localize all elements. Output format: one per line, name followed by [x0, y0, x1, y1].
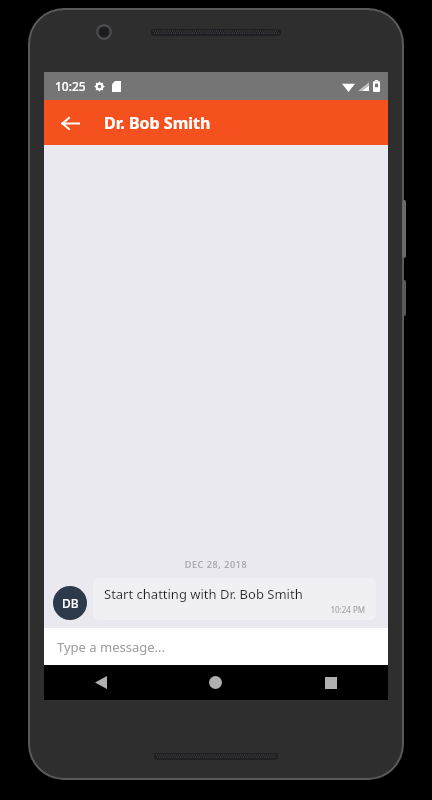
button[interactable]: DB: [53, 578, 376, 620]
staticText: Start chatting with Dr. Bob Smith: [104, 585, 303, 603]
staticText: DB: [62, 595, 79, 611]
staticText: Type a message...: [57, 638, 165, 656]
button[interactable]: Home: [158, 665, 273, 700]
staticText: Dr. Bob Smith: [104, 112, 211, 134]
button[interactable]: Recent apps: [273, 665, 388, 700]
staticText: DEC 28, 2018: [44, 558, 388, 570]
button[interactable]: Type a message...: [44, 628, 388, 665]
staticText: 10:25: [55, 78, 86, 94]
staticText: 10:24 PM: [104, 604, 365, 615]
button[interactable]: Back: [44, 665, 158, 700]
button[interactable]: Back: [52, 105, 88, 141]
